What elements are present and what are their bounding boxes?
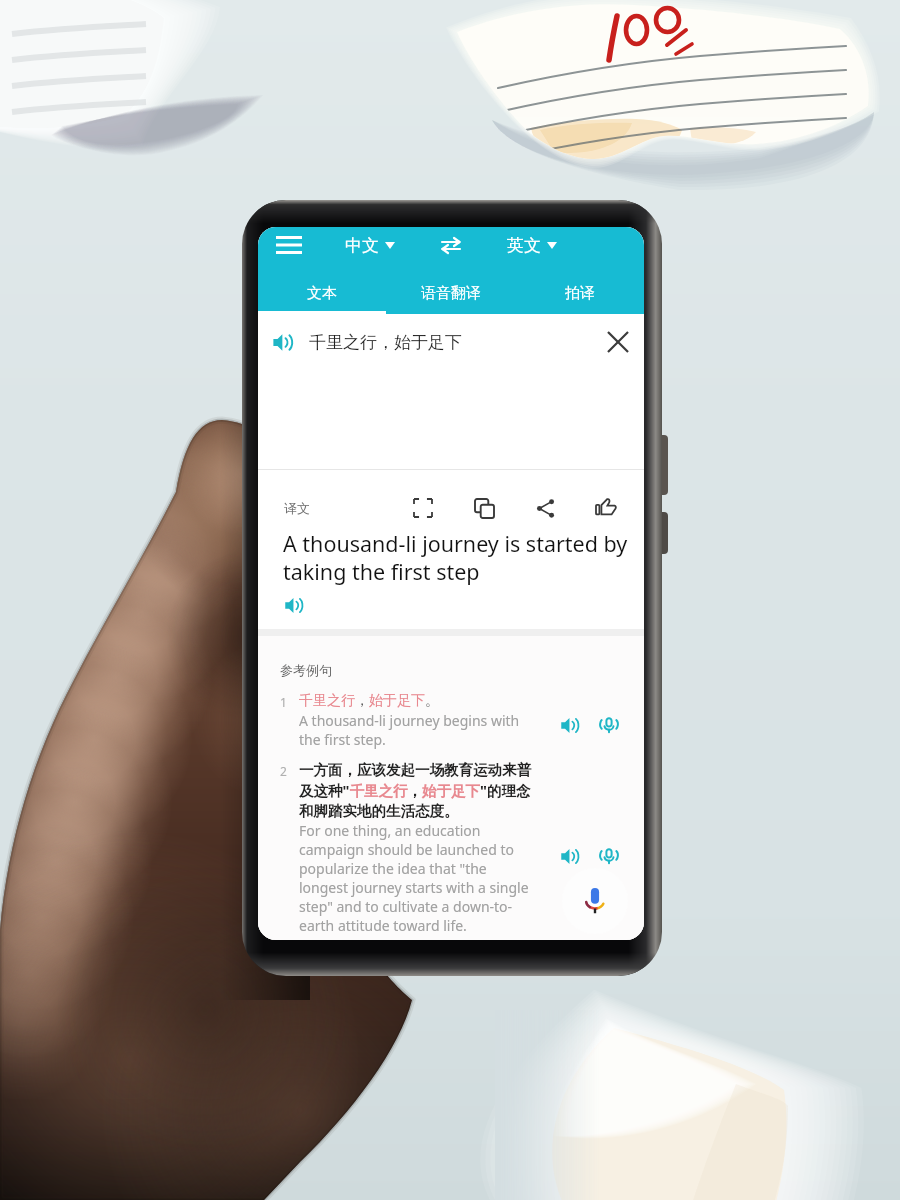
button[interactable]: Like: [592, 494, 620, 522]
button[interactable]: Play example 1: [557, 712, 583, 738]
staticText: 一方面，应该发起一场教育运动来普及这种"千里之行，始于足下"的理念和脚踏实地的生…: [299, 761, 537, 820]
staticText: 译文: [284, 500, 310, 516]
button[interactable]: Swap languages: [435, 229, 467, 261]
staticText: 1: [280, 694, 299, 710]
button[interactable]: Menu: [272, 228, 306, 262]
button[interactable]: Clear: [604, 328, 632, 356]
staticText: 语音翻译: [421, 284, 481, 303]
button[interactable]: 英文: [505, 231, 559, 260]
button[interactable]: Play example 2: [557, 843, 583, 869]
button[interactable]: Speak example 2: [596, 843, 622, 869]
staticText: 文本: [307, 284, 337, 303]
button[interactable]: 语音翻译: [386, 273, 515, 314]
button[interactable]: 中文: [343, 231, 397, 260]
button[interactable]: Play translation: [281, 592, 307, 618]
button[interactable]: 拍译: [515, 273, 644, 314]
button[interactable]: Copy: [470, 494, 498, 522]
staticText: 2: [280, 763, 299, 779]
staticText: A thousand-li journey is started by taki…: [283, 529, 638, 586]
staticText: For one thing, an education campaign sho…: [299, 821, 537, 935]
staticText: A thousand-li journey begins with the fi…: [299, 711, 537, 749]
staticText: 拍译: [565, 284, 595, 303]
staticText: 中文: [345, 235, 379, 256]
staticText: 英文: [507, 235, 541, 256]
button[interactable]: Fullscreen: [409, 494, 437, 522]
staticText: 参考例句: [280, 662, 332, 678]
staticText: 千里之行，始于足下。: [299, 692, 439, 710]
button[interactable]: Share: [531, 494, 559, 522]
button[interactable]: Voice input: [562, 868, 628, 934]
button[interactable]: Speak example 1: [596, 712, 622, 738]
button[interactable]: Play source audio: [270, 329, 296, 355]
button[interactable]: 文本: [258, 273, 386, 314]
staticText: 千里之行，始于足下: [309, 332, 462, 353]
